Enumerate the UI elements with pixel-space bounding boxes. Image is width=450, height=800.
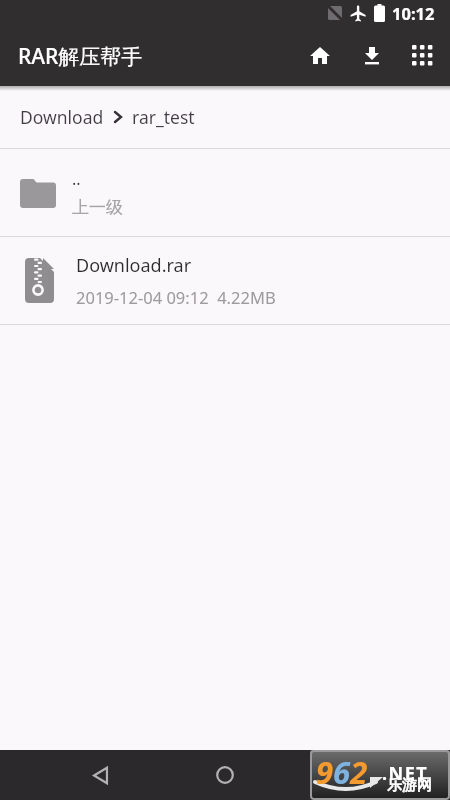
staticText: 上一级 [72, 197, 123, 218]
button[interactable]: Download.rar [0, 237, 450, 324]
staticText: rar_test [132, 105, 195, 129]
staticText: 10:12 [392, 2, 435, 24]
staticText: .NET [382, 761, 429, 786]
staticText: Download.rar [76, 253, 192, 278]
button[interactable] [203, 753, 247, 797]
staticText: 乐游网 [387, 776, 432, 795]
staticText: .. [72, 168, 81, 190]
button[interactable] [78, 753, 122, 797]
staticText: Download [20, 105, 104, 129]
button[interactable] [398, 26, 448, 86]
staticText: 2019-12-04 09:12 4.22MB [76, 286, 276, 308]
staticText: 962 [316, 751, 368, 793]
button[interactable]: Download [0, 86, 450, 148]
staticText: RAR解压帮手 [18, 42, 143, 71]
button[interactable] [346, 26, 398, 86]
button[interactable]: .. [0, 149, 450, 236]
button[interactable] [294, 26, 346, 86]
